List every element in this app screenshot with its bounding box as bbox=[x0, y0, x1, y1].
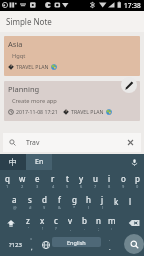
staticText: n bbox=[96, 215, 101, 226]
button[interactable]: Shift bbox=[0, 213, 21, 233]
button[interactable]: Change language bbox=[39, 233, 52, 256]
staticText: 7 bbox=[94, 184, 97, 189]
staticText: u bbox=[93, 173, 98, 184]
button[interactable]: r bbox=[45, 170, 60, 191]
staticText: 2 bbox=[21, 184, 24, 189]
staticText: Trav bbox=[26, 138, 40, 147]
button[interactable]: k bbox=[109, 191, 123, 212]
button[interactable]: g bbox=[67, 191, 81, 212]
staticText: ! bbox=[42, 226, 44, 231]
staticText: Asia bbox=[8, 39, 23, 49]
staticText: q bbox=[5, 173, 10, 184]
button[interactable]: x bbox=[35, 213, 49, 233]
staticText: 0 bbox=[136, 184, 139, 189]
staticText: 5 bbox=[66, 184, 69, 189]
button[interactable]: a bbox=[7, 191, 22, 212]
button[interactable]: j bbox=[95, 191, 109, 212]
staticText: 2017-11-08 17:21 bbox=[16, 108, 58, 115]
button[interactable]: w bbox=[15, 170, 30, 191]
button[interactable]: Search bbox=[124, 234, 144, 254]
button[interactable]: l bbox=[123, 191, 137, 212]
staticText: w bbox=[19, 173, 26, 184]
button[interactable]: z bbox=[21, 213, 35, 233]
staticText: y bbox=[79, 173, 84, 184]
button[interactable]: u bbox=[88, 170, 102, 191]
button[interactable]: h bbox=[81, 191, 95, 212]
button[interactable]: o bbox=[116, 170, 130, 191]
button[interactable]: q bbox=[0, 170, 15, 191]
button[interactable]: En bbox=[26, 154, 52, 170]
staticText: e bbox=[35, 173, 40, 184]
staticText: v bbox=[68, 215, 73, 226]
button[interactable]: Asia bbox=[4, 36, 140, 76]
staticText: 8 bbox=[108, 184, 111, 189]
button[interactable]: b bbox=[77, 213, 91, 233]
button[interactable]: Planning bbox=[4, 81, 140, 121]
button[interactable]: Voice input bbox=[129, 157, 140, 168]
staticText: p bbox=[135, 173, 140, 184]
button[interactable]: · bbox=[103, 233, 117, 256]
button[interactable]: p bbox=[130, 170, 144, 191]
staticText: b bbox=[82, 215, 87, 226]
staticText: , bbox=[70, 226, 72, 231]
button[interactable]: ?123 bbox=[2, 233, 28, 256]
staticText: . bbox=[109, 244, 111, 252]
staticText: ; bbox=[98, 226, 100, 231]
staticText: 17:38 bbox=[124, 1, 141, 10]
button[interactable]: Edit note bbox=[121, 77, 137, 93]
staticText: TRAVEL PLAN bbox=[71, 108, 104, 115]
staticText: * bbox=[73, 205, 76, 210]
button[interactable]: c bbox=[49, 213, 63, 233]
staticText: 9 bbox=[122, 184, 125, 189]
staticText: & bbox=[58, 205, 61, 210]
button[interactable]: 中 bbox=[0, 154, 26, 170]
staticText: Hgqt bbox=[12, 52, 26, 60]
staticText: z bbox=[26, 215, 30, 226]
button[interactable]: i bbox=[102, 170, 116, 191]
staticText: TRAVEL PLAN bbox=[16, 63, 49, 70]
staticText: ) bbox=[102, 205, 104, 210]
staticText: r bbox=[51, 173, 55, 184]
staticText: t bbox=[66, 173, 69, 184]
staticText: ?123 bbox=[9, 241, 22, 249]
staticText: ¥ bbox=[43, 205, 46, 210]
staticText: h bbox=[86, 194, 91, 205]
button[interactable]: y bbox=[74, 170, 88, 191]
staticText: @ bbox=[13, 205, 17, 210]
staticText: j bbox=[101, 194, 104, 205]
button[interactable]: Trav bbox=[3, 133, 141, 152]
staticText: ' bbox=[28, 226, 29, 231]
button[interactable]: Backspace bbox=[127, 216, 141, 230]
staticText: Simple Note bbox=[6, 16, 52, 27]
staticText: k bbox=[114, 196, 119, 207]
button[interactable]: English bbox=[52, 237, 101, 247]
staticText: a bbox=[12, 194, 17, 205]
staticText: . bbox=[84, 226, 86, 231]
button[interactable]: t bbox=[60, 170, 74, 191]
button[interactable]: Clear search bbox=[125, 137, 136, 148]
staticText: ( bbox=[88, 205, 90, 210]
staticText: , bbox=[31, 244, 33, 252]
button[interactable]: s bbox=[22, 191, 37, 212]
staticText: 1 bbox=[6, 184, 9, 189]
button[interactable]: ° bbox=[24, 233, 39, 256]
button[interactable]: m bbox=[105, 213, 119, 233]
staticText: d bbox=[42, 194, 47, 205]
staticText: l bbox=[129, 196, 132, 207]
button[interactable]: v bbox=[63, 213, 77, 233]
staticText: 3 bbox=[36, 184, 39, 189]
staticText: ° bbox=[30, 237, 33, 244]
staticText: 中 bbox=[9, 157, 17, 167]
button[interactable]: n bbox=[91, 213, 105, 233]
button[interactable]: e bbox=[30, 170, 45, 191]
staticText: · bbox=[109, 237, 111, 244]
button[interactable]: d bbox=[37, 191, 52, 212]
button[interactable]: f bbox=[52, 191, 67, 212]
staticText: Create more app bbox=[12, 97, 57, 105]
staticText: g bbox=[72, 194, 77, 205]
staticText: # bbox=[29, 205, 32, 210]
staticText: i bbox=[108, 173, 111, 184]
staticText: s bbox=[28, 194, 32, 205]
staticText: c bbox=[54, 215, 58, 226]
staticText: o bbox=[121, 173, 126, 184]
